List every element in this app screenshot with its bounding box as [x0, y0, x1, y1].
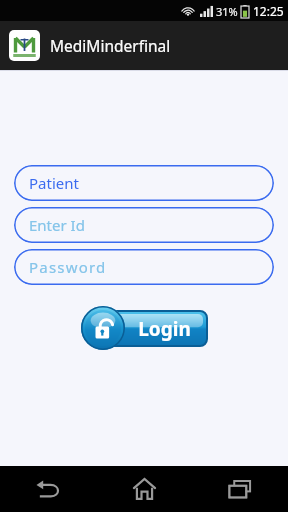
button[interactable]: Home: [96, 466, 192, 512]
staticText: Patient: [29, 173, 79, 193]
staticText: 12:25: [253, 3, 284, 19]
button[interactable]: Login: [81, 306, 207, 350]
staticText: Password: [29, 257, 107, 277]
staticText: Enter Id: [29, 215, 85, 235]
button[interactable]: Recent apps: [192, 466, 288, 512]
button[interactable]: Back: [0, 466, 96, 512]
staticText: Login: [138, 316, 191, 342]
button[interactable]: App icon: [9, 30, 40, 61]
button[interactable]: Patient: [14, 165, 274, 201]
staticText: MediMinderfinal: [50, 35, 171, 56]
button[interactable]: Enter Id: [14, 207, 274, 243]
staticText: 31%: [216, 4, 238, 19]
button[interactable]: Password: [14, 249, 274, 285]
